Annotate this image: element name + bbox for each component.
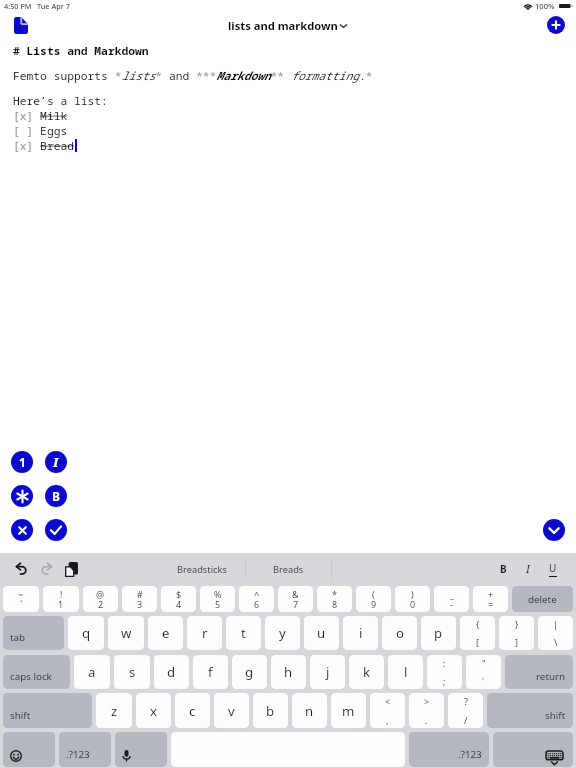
button[interactable]: h bbox=[271, 655, 306, 689]
button[interactable]: Bullet list bbox=[11, 485, 33, 507]
button[interactable]: n bbox=[292, 693, 327, 728]
button[interactable]: .?123 bbox=[59, 732, 111, 767]
button[interactable]: Hide keyboard bbox=[543, 519, 565, 541]
button[interactable]: Dictate bbox=[115, 732, 167, 767]
button[interactable]: ) bbox=[395, 586, 430, 612]
button[interactable]: g bbox=[232, 655, 267, 689]
button[interactable]: | bbox=[538, 616, 573, 650]
staticText: 2 bbox=[98, 598, 104, 610]
button[interactable]: v bbox=[214, 693, 249, 728]
button[interactable]: ? bbox=[448, 693, 483, 728]
staticText: B bbox=[52, 488, 60, 504]
button[interactable]: Italic bbox=[519, 560, 537, 578]
button[interactable]: delete bbox=[512, 586, 573, 612]
button[interactable]: o bbox=[382, 616, 417, 650]
button[interactable]: New note bbox=[547, 16, 565, 34]
button[interactable]: r bbox=[187, 616, 222, 650]
button[interactable]: < bbox=[370, 693, 405, 728]
staticText: j bbox=[326, 663, 330, 681]
button[interactable]: } bbox=[499, 616, 534, 650]
button[interactable]: lists and markdown bbox=[224, 14, 352, 37]
button[interactable]: t bbox=[226, 616, 261, 650]
button[interactable]: Documents bbox=[8, 12, 34, 38]
staticText: 7 bbox=[293, 598, 299, 610]
button[interactable]: Emoji bbox=[3, 732, 55, 767]
button[interactable]: Bold bbox=[494, 560, 512, 578]
button[interactable]: : bbox=[427, 655, 462, 689]
button[interactable]: @ bbox=[83, 586, 118, 612]
button[interactable]: + bbox=[473, 586, 508, 612]
button[interactable]: " bbox=[466, 655, 501, 689]
button[interactable]: caps lock bbox=[3, 655, 70, 689]
button[interactable]: w bbox=[108, 616, 144, 650]
button[interactable]: s bbox=[114, 655, 150, 689]
button[interactable]: b bbox=[253, 693, 288, 728]
staticText: z bbox=[111, 702, 118, 720]
button[interactable]: Underline bbox=[544, 560, 562, 578]
button[interactable]: $ bbox=[161, 586, 196, 612]
staticText: .?123 bbox=[458, 748, 482, 761]
button[interactable]: i bbox=[343, 616, 378, 650]
button[interactable]: { bbox=[460, 616, 495, 650]
staticText: . bbox=[425, 714, 428, 726]
staticText: Femto supports *lists* and ***Markdown**… bbox=[13, 68, 373, 83]
button[interactable]: ( bbox=[356, 586, 391, 612]
button[interactable]: q bbox=[68, 616, 104, 650]
button[interactable]: Bold bbox=[45, 485, 67, 507]
button[interactable]: _ bbox=[434, 586, 469, 612]
button[interactable]: > bbox=[409, 693, 444, 728]
button[interactable]: d bbox=[154, 655, 189, 689]
button[interactable]: c bbox=[175, 693, 210, 728]
staticText: m bbox=[342, 702, 355, 720]
other: Hide keyboard bbox=[493, 732, 573, 767]
button[interactable]: a bbox=[74, 655, 110, 689]
button[interactable]: Breadsticks bbox=[159, 553, 245, 585]
button[interactable]: tab bbox=[3, 616, 64, 650]
button[interactable]: Undo bbox=[11, 559, 31, 579]
staticText: : bbox=[443, 657, 446, 669]
button[interactable]: Check item bbox=[45, 519, 67, 541]
button[interactable]: m bbox=[331, 693, 366, 728]
button[interactable]: p bbox=[421, 616, 456, 650]
staticText: ) bbox=[411, 588, 414, 600]
button[interactable]: # bbox=[122, 586, 157, 612]
button[interactable]: Italic bbox=[45, 451, 67, 473]
button[interactable]: ^ bbox=[239, 586, 274, 612]
button[interactable]: Redo bbox=[36, 559, 56, 579]
button[interactable]: Breads bbox=[246, 553, 331, 585]
button[interactable]: k bbox=[349, 655, 384, 689]
button[interactable]: u bbox=[304, 616, 339, 650]
button[interactable]: return bbox=[505, 655, 573, 689]
button[interactable]: Hide keyboard bbox=[493, 732, 573, 767]
button[interactable]: % bbox=[200, 586, 235, 612]
button[interactable]: z bbox=[96, 693, 132, 728]
button[interactable]: Numbered list bbox=[11, 451, 33, 473]
button[interactable]: shift bbox=[3, 693, 92, 728]
button[interactable]: ~ bbox=[3, 586, 39, 612]
button[interactable]: .?123 bbox=[409, 732, 489, 767]
staticText: ^ bbox=[254, 588, 260, 600]
button[interactable]: Uncheck item bbox=[11, 519, 33, 541]
button[interactable]: f bbox=[193, 655, 228, 689]
staticText: # bbox=[137, 588, 143, 600]
button[interactable]: j bbox=[310, 655, 345, 689]
button[interactable]: y bbox=[265, 616, 300, 650]
button[interactable]: shift bbox=[487, 693, 573, 728]
staticText: % bbox=[214, 588, 222, 600]
staticText: s bbox=[129, 663, 136, 681]
button[interactable]: x bbox=[136, 693, 171, 728]
button[interactable]: l bbox=[388, 655, 423, 689]
staticText: 3 bbox=[137, 598, 143, 610]
button[interactable]: Paste bbox=[61, 559, 81, 579]
staticText: ` bbox=[20, 598, 23, 610]
staticText: lists and markdown bbox=[228, 18, 338, 33]
staticText: b bbox=[266, 702, 275, 720]
button[interactable]: & bbox=[278, 586, 313, 612]
button[interactable]: ! bbox=[43, 586, 79, 612]
button[interactable]: e bbox=[148, 616, 183, 650]
button[interactable]: * bbox=[317, 586, 352, 612]
staticText: tab bbox=[10, 631, 26, 644]
staticText: 6 bbox=[254, 598, 260, 610]
staticText: _ bbox=[450, 588, 454, 600]
